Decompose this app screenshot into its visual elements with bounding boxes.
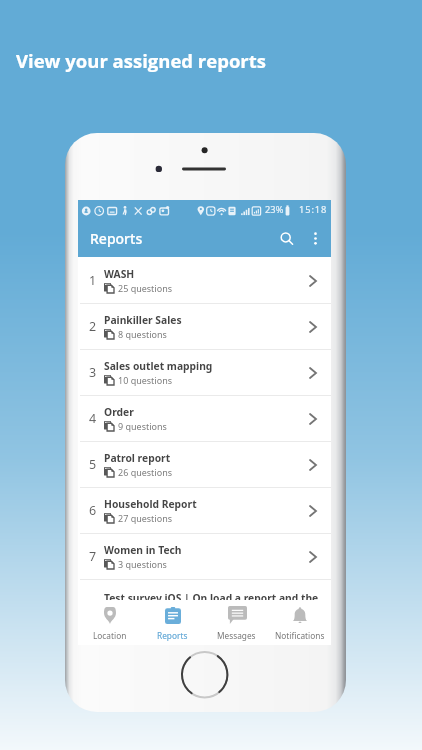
staticText: 15:18 xyxy=(299,203,328,216)
button[interactable]: Location xyxy=(78,600,141,645)
button[interactable]: Messages xyxy=(205,600,268,645)
staticText: WASH xyxy=(104,267,135,281)
button[interactable]: 1 xyxy=(78,258,331,303)
staticText: 8 questions xyxy=(118,328,167,340)
button[interactable]: 7 xyxy=(78,534,331,579)
staticText: View your assigned reports xyxy=(16,48,266,73)
staticText: Household Report xyxy=(104,497,197,511)
staticText: 23% xyxy=(265,203,284,216)
button[interactable]: Search xyxy=(272,224,301,253)
staticText: Location xyxy=(93,630,127,641)
staticText: Women in Tech xyxy=(104,543,182,557)
staticText: Notifications xyxy=(275,630,325,641)
staticText: 7 xyxy=(89,548,97,565)
button[interactable]: 6 xyxy=(78,488,331,533)
staticText: 26 questions xyxy=(118,466,173,478)
staticText: 27 questions xyxy=(118,512,173,524)
button[interactable]: Test survey iOS | On load a report and t… xyxy=(78,580,331,626)
staticText: Order xyxy=(104,405,134,419)
staticText: 5 xyxy=(89,456,97,473)
staticText: 2 xyxy=(89,318,97,335)
button[interactable]: 4 xyxy=(78,396,331,441)
staticText: Reports xyxy=(157,630,188,641)
staticText: 4 xyxy=(89,410,97,427)
staticText: 6 xyxy=(89,502,97,519)
staticText: Reports xyxy=(90,229,143,248)
staticText: 1 xyxy=(89,272,97,289)
button[interactable]: 2 xyxy=(78,304,331,349)
staticText: 9 questions xyxy=(118,420,167,432)
button[interactable]: 3 xyxy=(78,350,331,395)
button[interactable]: 5 xyxy=(78,442,331,487)
staticText: Patrol report xyxy=(104,451,171,465)
button[interactable]: More options xyxy=(301,224,330,253)
button[interactable]: Notifications xyxy=(268,600,331,645)
staticText: Messages xyxy=(217,630,256,641)
staticText: Test survey iOS | On load a report and t… xyxy=(104,591,319,605)
button[interactable]: Reports xyxy=(141,600,204,645)
staticText: Sales outlet mapping xyxy=(104,359,213,373)
staticText: 25 questions xyxy=(118,282,173,294)
staticText: 3 questions xyxy=(118,558,167,570)
staticText: 3 xyxy=(89,364,97,381)
staticText: 10 questions xyxy=(118,374,173,386)
staticText: Painkiller Sales xyxy=(104,313,182,327)
